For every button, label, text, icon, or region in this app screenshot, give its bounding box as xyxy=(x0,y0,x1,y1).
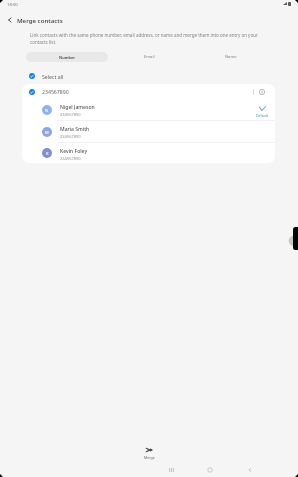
staticText: Merge contacts xyxy=(17,17,63,25)
staticText: Merge xyxy=(144,455,155,460)
button[interactable]: Back xyxy=(237,462,263,477)
button[interactable]: Number xyxy=(26,52,108,62)
staticText: Link contacts with the same phone number… xyxy=(30,32,259,45)
button[interactable]: N xyxy=(22,99,275,120)
staticText: K xyxy=(46,151,49,156)
button[interactable]: Email xyxy=(108,52,190,62)
staticText: N xyxy=(45,108,49,113)
staticText: Maria Smith xyxy=(60,126,90,133)
button[interactable]: K xyxy=(22,143,275,163)
button[interactable]: More information xyxy=(254,84,270,99)
button[interactable]: M xyxy=(22,121,275,142)
staticText: Number xyxy=(59,55,76,60)
staticText: Email xyxy=(144,54,155,60)
staticText: 234567890 xyxy=(60,112,81,117)
staticText: Nigel Jameson xyxy=(60,104,95,111)
staticText: 234567890 xyxy=(42,88,69,95)
staticText: Select all xyxy=(42,73,64,80)
staticText: 18:00 xyxy=(7,2,18,8)
button[interactable]: Navigate up xyxy=(5,15,15,25)
staticText: Name xyxy=(225,54,237,60)
button[interactable]: Recent apps xyxy=(158,462,184,477)
button[interactable]: Select all xyxy=(22,70,275,82)
button[interactable]: Name xyxy=(190,52,272,62)
staticText: M xyxy=(45,130,49,135)
button[interactable]: Home xyxy=(197,462,223,477)
staticText: 234567890 xyxy=(60,134,81,139)
staticText: Kevin Foley xyxy=(60,148,88,155)
button[interactable]: Merge xyxy=(136,448,162,460)
staticText: Default xyxy=(256,113,269,118)
staticText: 234567890 xyxy=(60,156,81,161)
